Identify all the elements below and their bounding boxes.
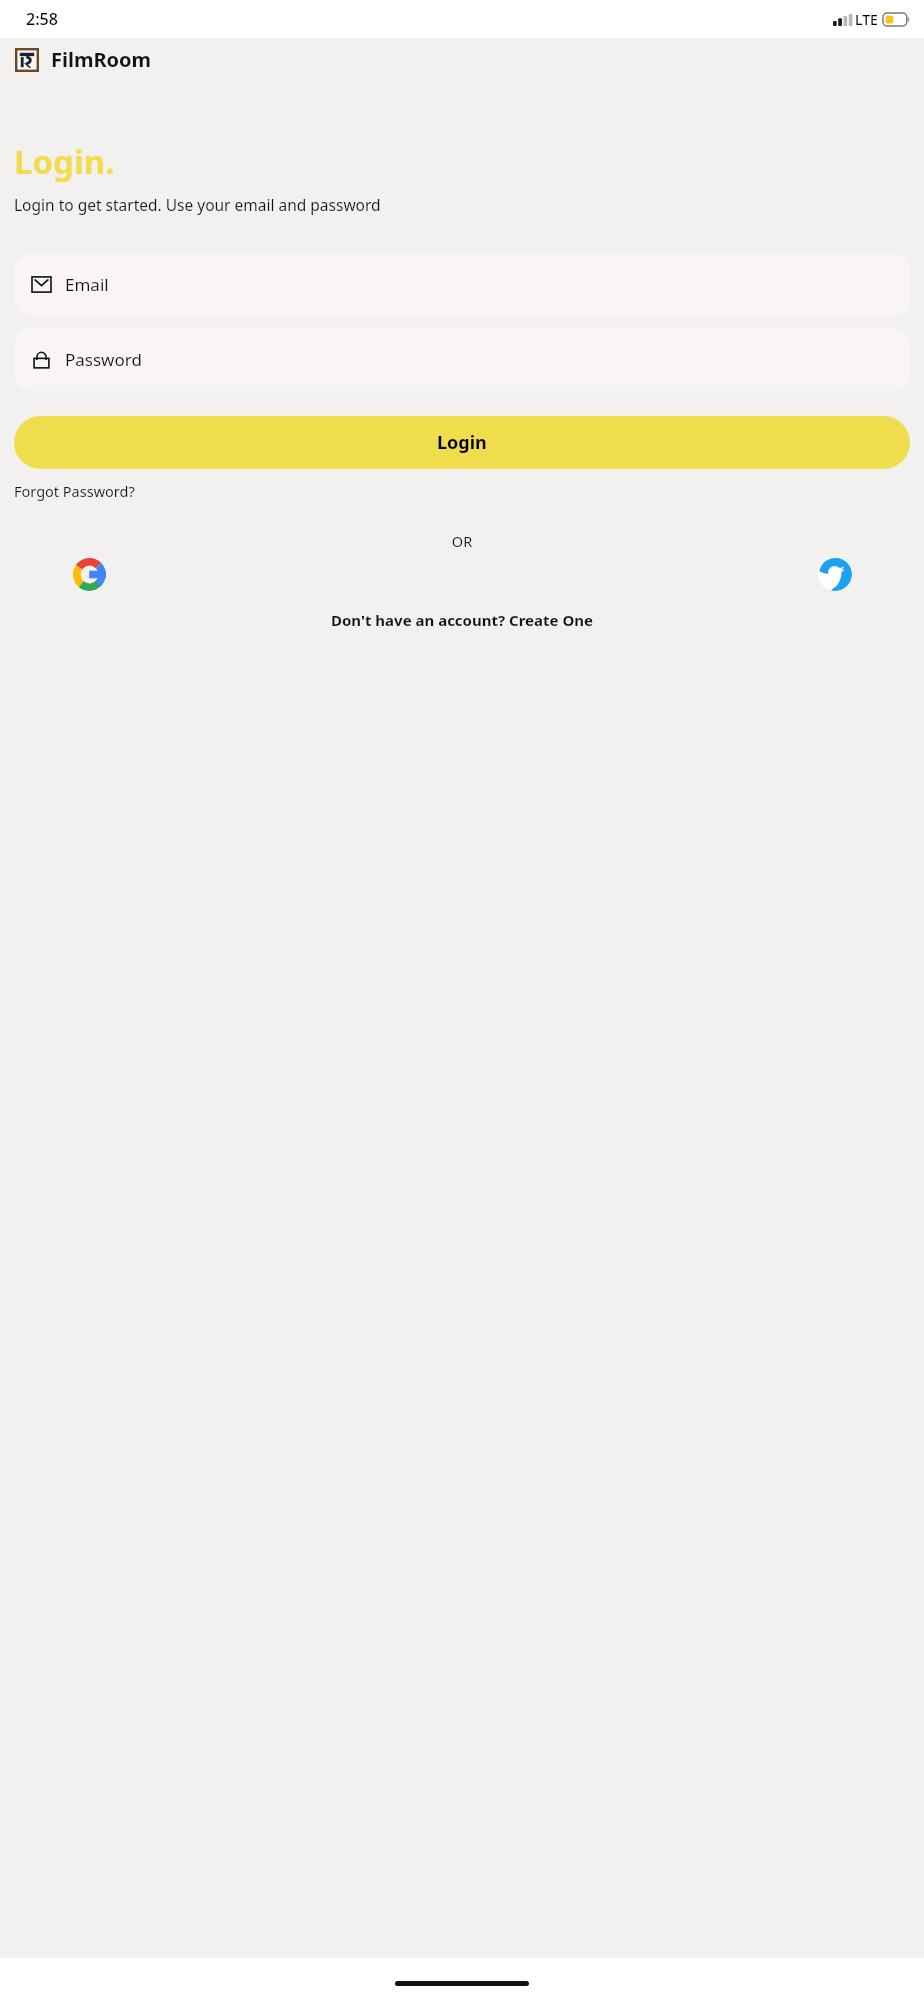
staticText: Password [65, 348, 142, 371]
staticText: Login [437, 430, 487, 455]
staticText: Login. [14, 139, 115, 184]
button[interactable]: Sign in with Twitter [818, 557, 852, 591]
button[interactable]: Sign in with Google [72, 557, 106, 591]
button[interactable]: Password [14, 328, 910, 391]
staticText: FilmRoom [51, 46, 152, 73]
staticText: Forgot Password? [14, 481, 135, 501]
button[interactable]: Email [14, 253, 910, 316]
button[interactable]: Forgot Password? [14, 479, 135, 503]
staticText: 2:58 [26, 8, 58, 30]
staticText: Login to get started. Use your email and… [14, 194, 381, 215]
button[interactable]: Login [14, 416, 910, 469]
staticText: LTE [855, 10, 878, 29]
staticText: Don't have an account? Create One [331, 610, 593, 630]
staticText: OR [0, 531, 924, 551]
staticText: Email [65, 273, 109, 296]
button[interactable]: Don't have an account? Create One [0, 607, 924, 633]
